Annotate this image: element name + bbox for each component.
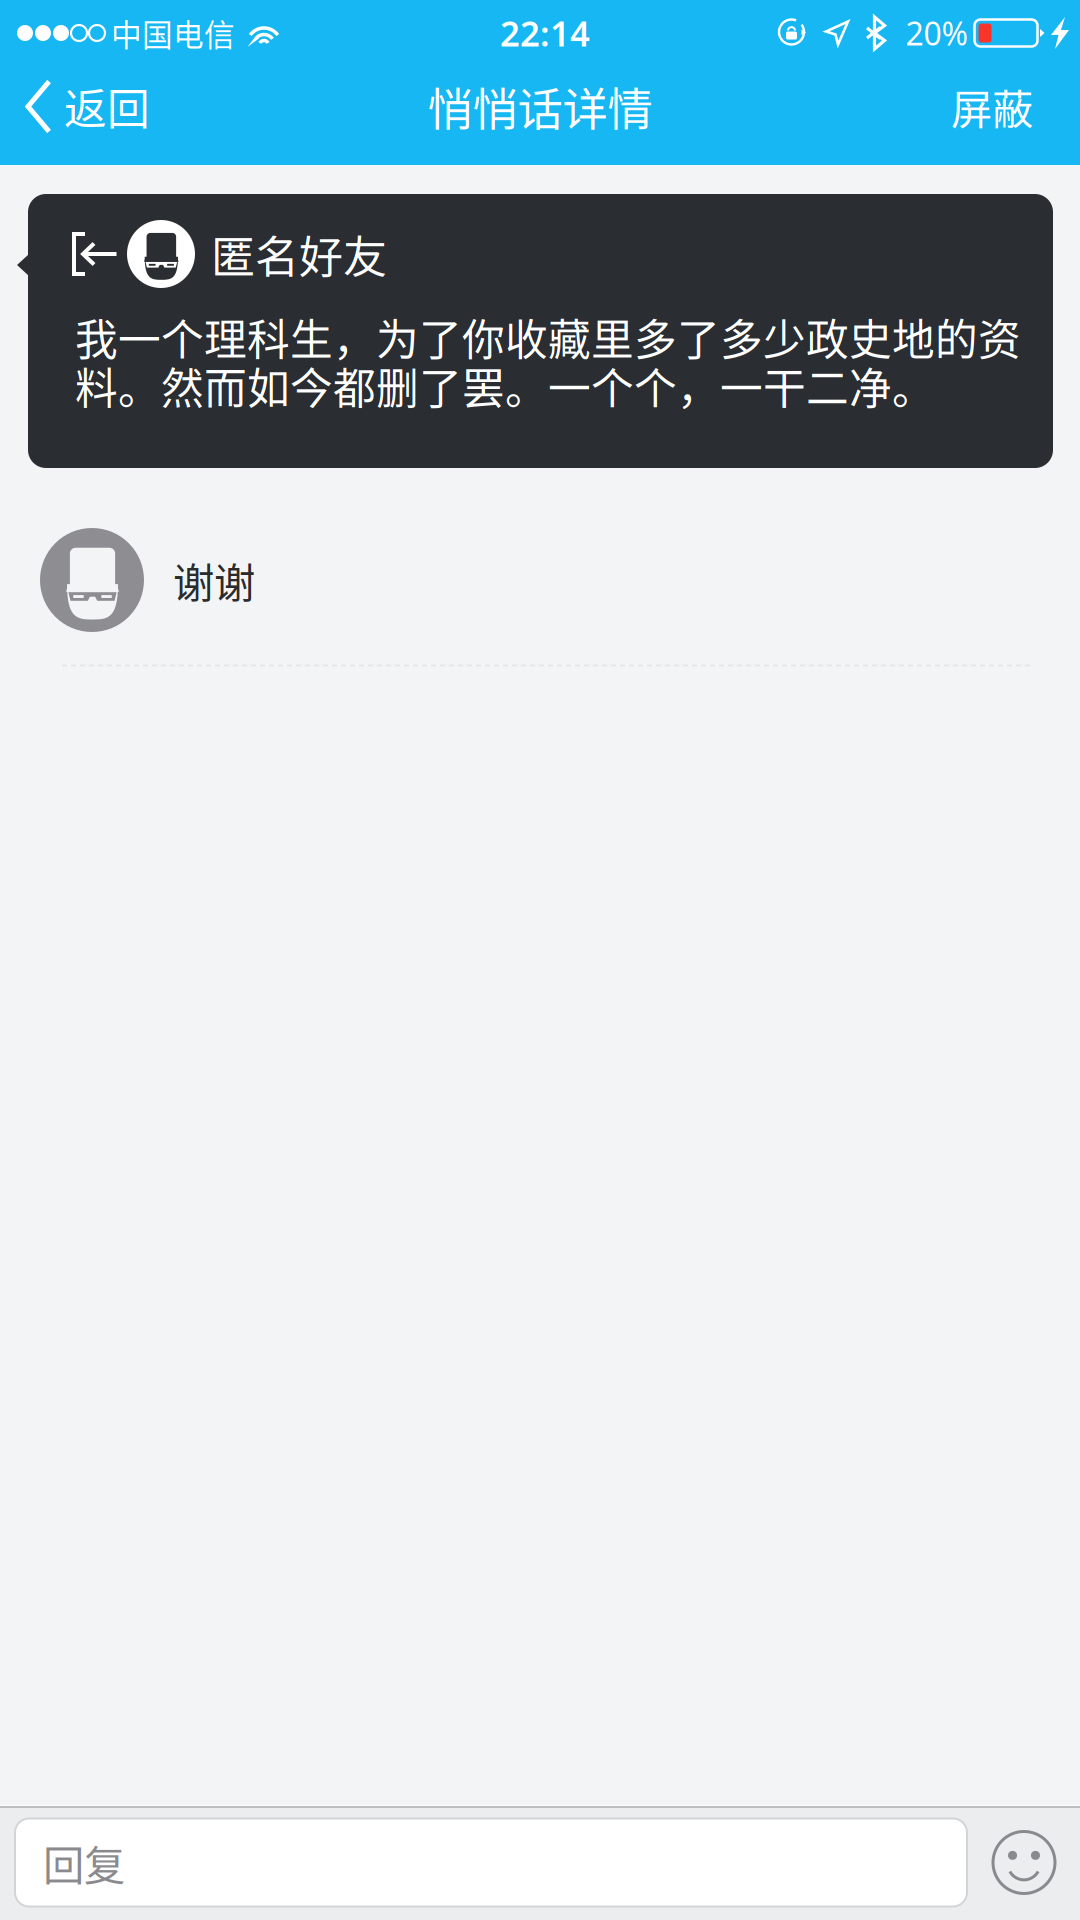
staticText: 悄悄话详情 — [427, 74, 652, 139]
staticText: 22:14 — [500, 9, 590, 57]
button[interactable]: 屏蔽 — [927, 66, 1080, 165]
staticText: 回复 — [43, 1833, 125, 1892]
button[interactable]: Emoji keyboard — [967, 1805, 1080, 1920]
staticText: 我一个理科生，为了你收藏里多了多少政史地的资料。然而如今都删了罢。一个个，一干二… — [75, 306, 1021, 417]
staticText: 20% — [905, 11, 968, 55]
staticText: 谢谢 — [173, 550, 255, 610]
staticText: 屏蔽 — [951, 77, 1033, 136]
button[interactable]: 回复 — [15, 1818, 967, 1906]
staticText: 匿名好友 — [211, 222, 387, 286]
staticText: 返回 — [64, 76, 150, 137]
staticText: 中国电信 — [111, 11, 235, 55]
button[interactable]: 返回 — [0, 66, 174, 165]
